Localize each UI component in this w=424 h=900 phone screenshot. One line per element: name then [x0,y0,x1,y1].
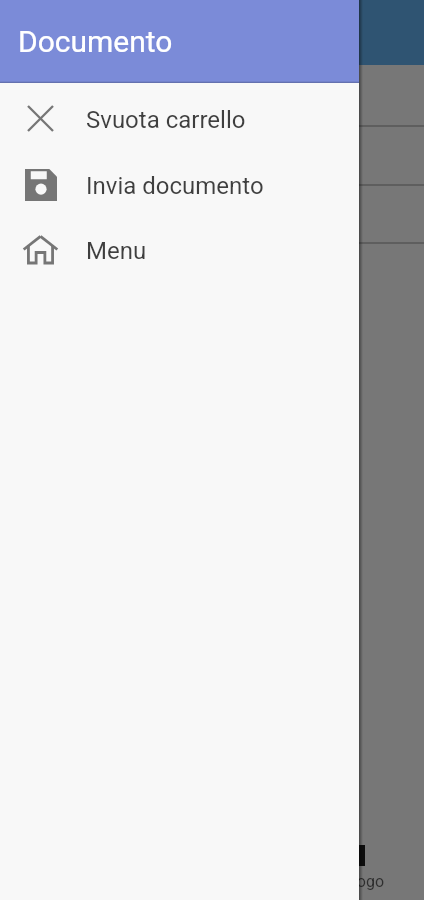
staticText: Svuota carrello [86,106,246,134]
staticText: Mio logo [322,872,385,891]
button[interactable]: Invia documento [0,151,359,217]
button[interactable]: Documento [0,0,359,83]
staticText: Menu [86,237,147,265]
button[interactable]: Menu [0,216,359,282]
staticText: Invia documento [86,172,264,200]
button[interactable]: Svuota carrello [0,85,359,151]
staticText: Documento [18,24,173,59]
